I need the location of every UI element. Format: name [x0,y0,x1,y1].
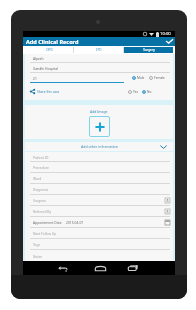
button[interactable]: No [142,90,152,94]
button[interactable]: Back [52,261,73,275]
staticText: Surgery [143,48,155,52]
button[interactable]: Surgery [124,47,173,53]
button[interactable]: Female [149,76,165,80]
staticText: Patient ID [33,155,49,159]
staticText: Surgeon [33,198,47,202]
staticText: Tags [33,242,41,246]
staticText: IPD [96,48,102,52]
button[interactable]: IPD [74,47,123,53]
button[interactable]: Recents [123,261,143,275]
button[interactable]: Add other information [25,142,173,151]
staticText: Next Follow Up [33,231,57,235]
button[interactable]: Share this case [25,89,60,94]
staticText: Female [154,76,165,80]
button[interactable]: Save [163,37,175,46]
staticText: OPD [46,48,53,52]
staticText: 10:00 [160,31,171,37]
staticText: Alpesh [33,56,44,60]
staticText: Notes [33,254,43,258]
button[interactable]: Yes [128,90,138,94]
staticText: Procedure [33,165,49,169]
button[interactable]: OPD [25,47,73,53]
staticText: Add other information [81,144,118,149]
staticText: Male [137,76,145,80]
staticText: Add Image [90,109,108,114]
button[interactable]: Add image [89,116,110,137]
staticText: No [147,90,152,94]
staticText: Share this case [37,90,60,94]
button[interactable]: Home [90,261,110,275]
staticText: 21 [33,76,37,80]
staticText: Diagnosis [33,187,49,191]
staticText: Yes [133,90,138,94]
button[interactable]: Male [132,76,145,80]
staticText: Gandhi Hospital [33,66,58,70]
staticText: 2015-04-07 [66,220,84,224]
staticText: Ward [33,176,42,180]
staticText: Appointment Date [33,220,62,224]
staticText: Add Clinical Record [26,38,79,45]
staticText: Referred By [33,209,52,213]
